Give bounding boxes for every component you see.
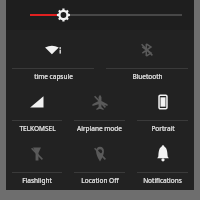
staticText: Notifications	[143, 176, 182, 185]
button[interactable]: Location Off	[68, 136, 131, 188]
button[interactable]: Notifications	[131, 136, 194, 188]
button[interactable]: Flashlight	[6, 136, 68, 188]
button[interactable]: TELKOMSEL	[6, 84, 68, 136]
staticText: Location Off	[81, 176, 119, 185]
button[interactable]: time capsule	[6, 32, 100, 84]
staticText: Flashlight	[22, 176, 52, 185]
staticText: Portrait	[151, 124, 175, 133]
button[interactable]: Airplane mode	[68, 84, 131, 136]
button[interactable]: Brightness	[6, 0, 194, 30]
staticText: time capsule	[34, 72, 73, 81]
staticText: Airplane mode	[77, 124, 122, 133]
button[interactable]: Portrait	[131, 84, 194, 136]
staticText: TELKOMSEL	[19, 124, 56, 133]
button[interactable]: Bluetooth	[100, 32, 194, 84]
staticText: Bluetooth	[132, 72, 163, 81]
